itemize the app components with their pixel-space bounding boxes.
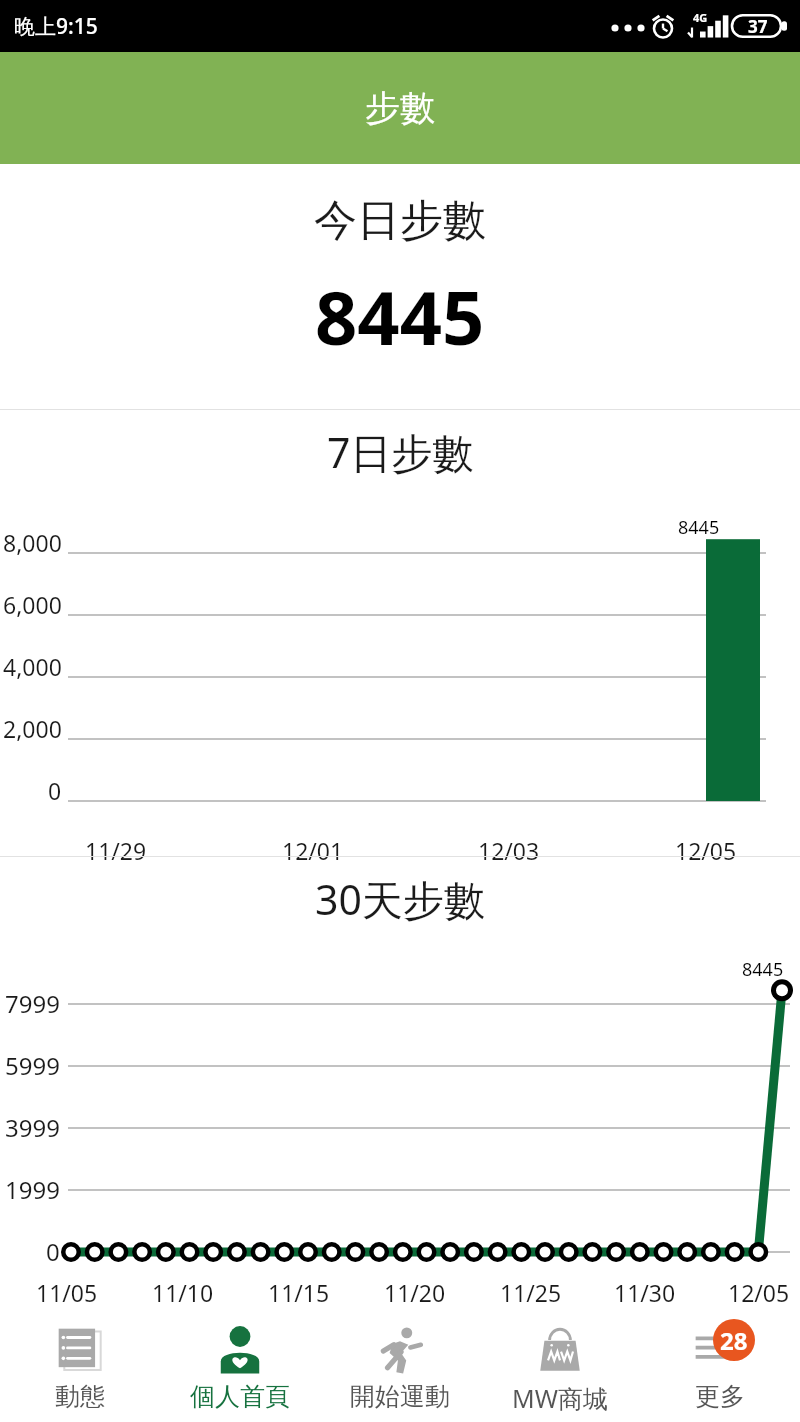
staticText: 4,000 xyxy=(3,651,62,682)
staticText: 1999 xyxy=(5,1173,60,1206)
staticText: 11/25 xyxy=(500,1277,562,1308)
staticText: 11/15 xyxy=(268,1277,330,1308)
staticText: 0 xyxy=(48,775,62,806)
button[interactable]: 開始運動 xyxy=(320,1313,480,1415)
button[interactable]: 個人首頁 xyxy=(160,1313,320,1415)
staticText: 12/01 xyxy=(282,835,344,866)
staticText: 12/03 xyxy=(478,835,540,866)
staticText: 11/10 xyxy=(152,1277,214,1308)
staticText: 5999 xyxy=(5,1049,60,1082)
other: 開始運動 xyxy=(374,1324,426,1376)
staticText: 更多 xyxy=(695,1381,745,1412)
staticText: 11/29 xyxy=(85,835,147,866)
staticText: 37 xyxy=(748,15,768,38)
staticText: MW商城 xyxy=(512,1381,608,1415)
staticText: 12/05 xyxy=(675,835,737,866)
staticText: 8445 xyxy=(678,515,720,540)
staticText: 晚上9:15 xyxy=(14,12,98,41)
staticText: 7日步數 xyxy=(327,424,474,480)
other: MW商城 xyxy=(534,1324,586,1376)
button[interactable]: MW商城 xyxy=(480,1313,640,1415)
staticText: 今日步數 xyxy=(314,194,486,248)
staticText: 8,000 xyxy=(3,527,62,558)
staticText: 7999 xyxy=(5,987,60,1020)
staticText: 2,000 xyxy=(3,713,62,744)
staticText: 6,000 xyxy=(3,589,62,620)
staticText: 12/05 xyxy=(728,1277,790,1308)
other: 更多 xyxy=(691,1321,749,1379)
staticText: 3999 xyxy=(5,1111,60,1144)
staticText: 動態 xyxy=(55,1381,105,1412)
staticText: 8445 xyxy=(742,957,784,982)
staticText: 11/20 xyxy=(384,1277,446,1308)
other: 個人首頁 xyxy=(214,1324,266,1376)
staticText: 30天步數 xyxy=(315,871,485,927)
other: 動態 xyxy=(54,1324,106,1376)
staticText: 28 xyxy=(720,1324,748,1357)
button[interactable]: 動態 xyxy=(0,1313,160,1415)
staticText: 11/30 xyxy=(614,1277,676,1308)
staticText: 個人首頁 xyxy=(190,1381,290,1412)
staticText: 0 xyxy=(46,1235,60,1268)
staticText: 11/05 xyxy=(36,1277,98,1308)
button[interactable]: 更多 xyxy=(640,1313,800,1415)
staticText: 步數 xyxy=(365,86,435,130)
staticText: 8445 xyxy=(315,266,485,367)
staticText: 開始運動 xyxy=(350,1381,450,1412)
staticText: 4G xyxy=(693,10,708,25)
